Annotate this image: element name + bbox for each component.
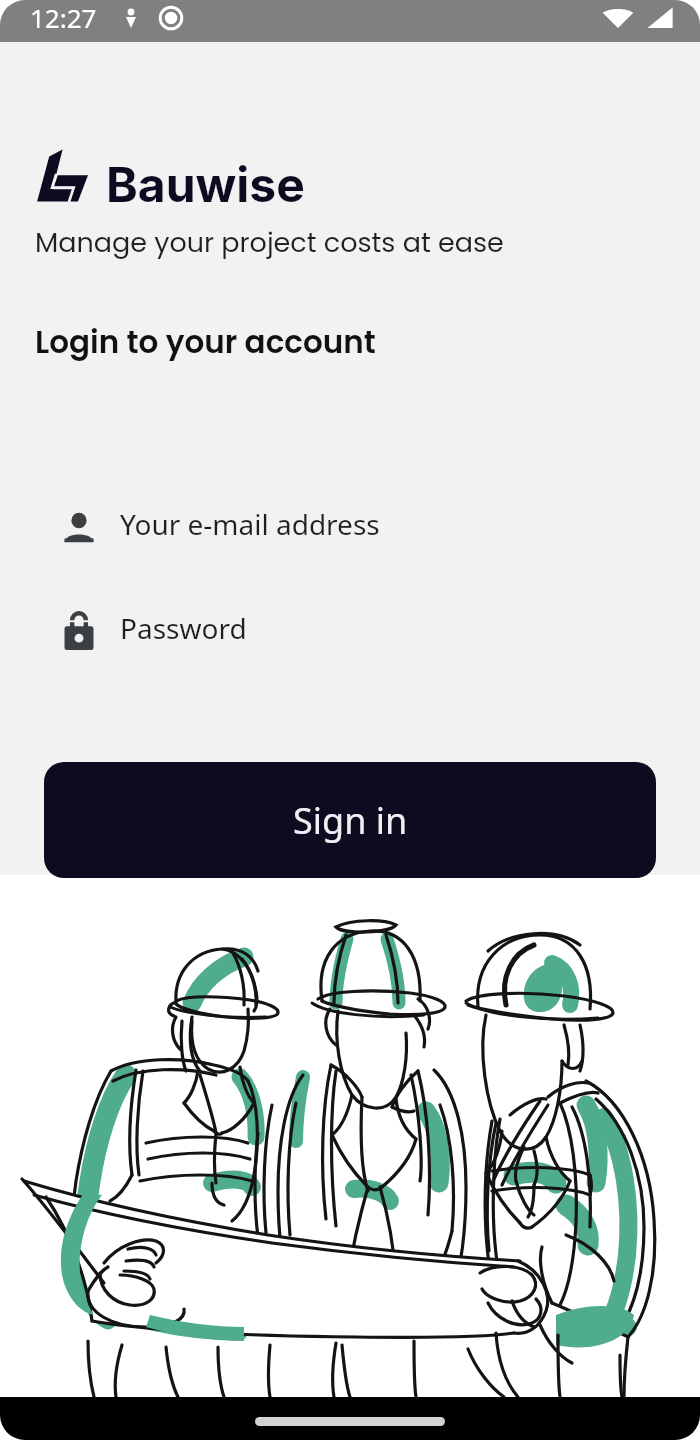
staticText: Manage your project costs at ease xyxy=(35,224,504,262)
button[interactable]: Your e-mail address xyxy=(58,497,700,551)
staticText: Login to your account xyxy=(35,320,376,363)
staticText: Sign in xyxy=(293,796,408,845)
button[interactable]: Password xyxy=(58,601,700,655)
staticText: Bauwise xyxy=(106,155,305,213)
button[interactable]: Sign in xyxy=(44,762,656,878)
staticText: Your e-mail address xyxy=(120,505,380,543)
staticText: 12:27 xyxy=(30,0,97,35)
staticText: Password xyxy=(120,609,247,647)
